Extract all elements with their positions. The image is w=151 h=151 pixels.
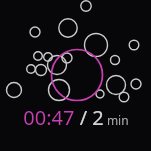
button[interactable]: 00:47 / 2 min xyxy=(23,104,129,131)
button[interactable]: Bubble timer progress xyxy=(0,0,151,151)
other: Bubble timer progress xyxy=(0,0,151,151)
staticText: 00:47 / 2 min xyxy=(23,104,129,131)
